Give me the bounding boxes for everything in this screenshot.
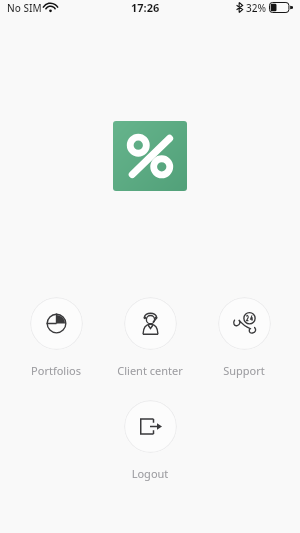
staticText: 17:26	[131, 0, 160, 15]
staticText: Logout	[113, 466, 187, 481]
staticText: Portfolios	[19, 363, 93, 378]
staticText: Client center	[113, 363, 187, 378]
button[interactable]: Portfolios	[19, 297, 93, 378]
staticText: 32%	[246, 1, 266, 15]
button[interactable]: Support	[207, 297, 281, 378]
staticText: Support	[207, 363, 281, 378]
staticText: No SIM	[7, 1, 42, 15]
button[interactable]: Logout	[113, 400, 187, 481]
button[interactable]: Client center	[113, 297, 187, 378]
